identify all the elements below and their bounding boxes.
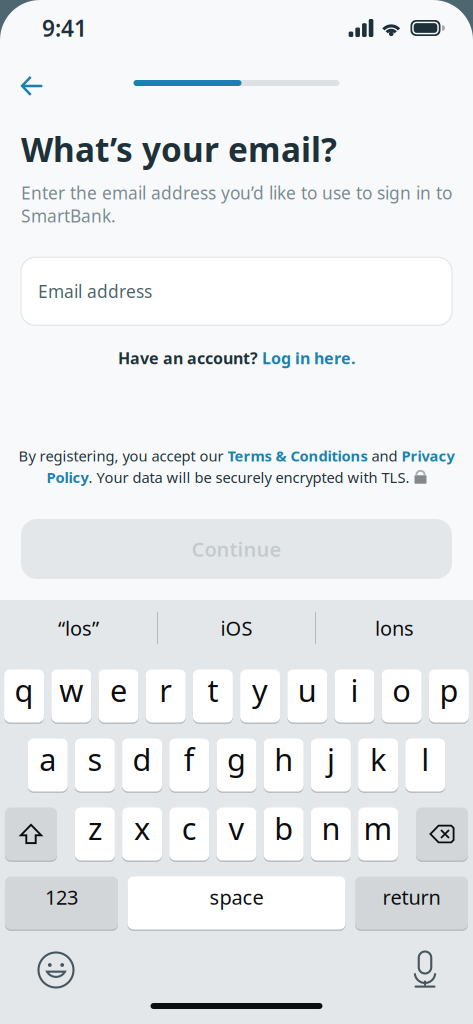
- staticText: q: [15, 670, 34, 710]
- staticText: x: [134, 808, 150, 848]
- staticText: y: [252, 670, 268, 710]
- button[interactable]: Terms & Conditions: [227, 446, 367, 465]
- button[interactable]: w: [51, 668, 91, 724]
- staticText: and: [367, 446, 401, 465]
- staticText: a: [39, 739, 56, 779]
- staticText: n: [321, 808, 340, 848]
- staticText: p: [439, 670, 458, 710]
- staticText: Have an account?: [118, 347, 258, 368]
- button[interactable]: h: [264, 737, 304, 793]
- staticText: l: [421, 739, 429, 779]
- button[interactable]: a: [28, 737, 68, 793]
- staticText: 9:41: [42, 13, 87, 43]
- button[interactable]: i: [334, 668, 374, 724]
- button[interactable]: Shift: [5, 806, 57, 862]
- button[interactable]: Continue: [21, 519, 452, 579]
- staticText: s: [87, 739, 102, 779]
- button[interactable]: return: [355, 875, 468, 931]
- button[interactable]: o: [382, 668, 422, 724]
- staticText: j: [327, 739, 335, 779]
- button[interactable]: Have an account?: [21, 341, 452, 374]
- staticText: Enter the email address you’d like to us…: [21, 181, 452, 227]
- staticText: Terms & Conditions: [227, 446, 367, 465]
- button[interactable]: Policy: [46, 467, 88, 487]
- button[interactable]: u: [287, 668, 327, 724]
- button[interactable]: Emoji keyboard: [34, 949, 78, 991]
- staticText: m: [364, 808, 393, 848]
- staticText: return: [382, 884, 440, 910]
- staticText: u: [298, 670, 317, 710]
- staticText: v: [228, 808, 244, 848]
- staticText: t: [207, 670, 218, 710]
- button[interactable]: f: [169, 737, 209, 793]
- button[interactable]: r: [146, 668, 186, 724]
- button[interactable]: z: [75, 806, 115, 862]
- button[interactable]: j: [311, 737, 351, 793]
- button[interactable]: x: [122, 806, 162, 862]
- button[interactable]: m: [358, 806, 398, 862]
- staticText: “los”: [58, 615, 99, 641]
- button[interactable]: q: [4, 668, 44, 724]
- button[interactable]: lons: [316, 604, 473, 652]
- staticText: z: [88, 808, 102, 848]
- button[interactable]: 123: [5, 875, 118, 931]
- staticText: g: [227, 739, 246, 779]
- button[interactable]: Back: [11, 61, 55, 104]
- button[interactable]: t: [193, 668, 233, 724]
- button[interactable]: e: [98, 668, 138, 724]
- button[interactable]: y: [240, 668, 280, 724]
- button[interactable]: space: [127, 875, 345, 931]
- staticText: Continue: [191, 536, 281, 562]
- button[interactable]: iOS: [158, 604, 315, 652]
- staticText: h: [274, 739, 293, 779]
- staticText: i: [350, 670, 358, 710]
- staticText: Log in here.: [262, 347, 355, 368]
- button[interactable]: k: [358, 737, 398, 793]
- staticText: Policy: [46, 467, 88, 487]
- staticText: 123: [45, 884, 78, 910]
- staticText: k: [370, 739, 386, 779]
- button[interactable]: Privacy: [401, 446, 454, 465]
- staticText: b: [274, 808, 293, 848]
- button[interactable]: s: [75, 737, 115, 793]
- button[interactable]: n: [311, 806, 351, 862]
- button[interactable]: Email address: [21, 257, 452, 325]
- button[interactable]: p: [429, 668, 469, 724]
- button[interactable]: l: [405, 737, 445, 793]
- staticText: d: [133, 739, 152, 779]
- staticText: w: [59, 670, 83, 710]
- button[interactable]: c: [169, 806, 209, 862]
- staticText: lons: [375, 615, 414, 641]
- staticText: By registering, you accept our: [18, 446, 227, 465]
- button[interactable]: d: [122, 737, 162, 793]
- button[interactable]: g: [216, 737, 256, 793]
- button[interactable]: b: [264, 806, 304, 862]
- staticText: f: [184, 739, 195, 779]
- staticText: . Your data will be securely encrypted w…: [88, 467, 409, 487]
- button[interactable]: Delete: [416, 806, 468, 862]
- button[interactable]: v: [216, 806, 256, 862]
- staticText: Privacy: [401, 446, 454, 465]
- staticText: iOS: [220, 615, 252, 641]
- staticText: o: [392, 670, 411, 710]
- staticText: e: [110, 670, 127, 710]
- staticText: What’s your email?: [21, 127, 337, 171]
- staticText: r: [159, 670, 172, 710]
- staticText: Email address: [38, 280, 152, 303]
- button[interactable]: “los”: [0, 604, 157, 652]
- staticText: c: [182, 808, 197, 848]
- button[interactable]: Dictation: [403, 949, 447, 991]
- staticText: space: [209, 884, 263, 910]
